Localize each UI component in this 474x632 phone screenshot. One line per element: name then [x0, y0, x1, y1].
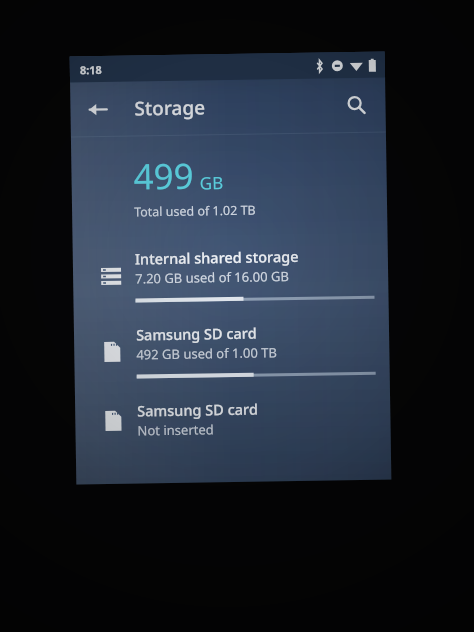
staticText: 8:18: [80, 62, 102, 77]
staticText: GB: [199, 171, 224, 194]
button[interactable]: Back: [76, 88, 119, 130]
staticText: 492 GB used of 1.00 TB: [136, 343, 277, 363]
staticText: Total used of 1.02 TB: [134, 202, 256, 220]
staticText: 499: [133, 152, 195, 201]
staticText: Storage: [134, 94, 206, 121]
button[interactable]: Samsung SD card: [75, 394, 391, 442]
staticText: Not inserted: [137, 420, 215, 439]
staticText: Samsung SD card: [136, 323, 257, 344]
staticText: Samsung SD card: [137, 399, 258, 420]
button[interactable]: Samsung SD card: [74, 318, 390, 381]
button[interactable]: Internal shared storage: [73, 242, 389, 305]
staticText: Internal shared storage: [135, 246, 299, 268]
button[interactable]: Search: [335, 84, 378, 126]
staticText: 7.20 GB used of 16.00 GB: [135, 267, 289, 287]
